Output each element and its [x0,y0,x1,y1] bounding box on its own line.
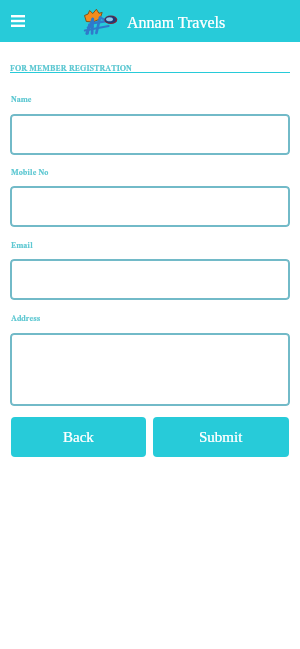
button[interactable]: Mobile No [11,163,49,181]
button[interactable]: Back [11,417,146,457]
button[interactable] [10,186,290,227]
staticText: FOR MEMBER REGISTRATION [10,59,132,77]
button[interactable]: Submit [153,417,289,457]
staticText: Address [11,309,41,327]
staticText: Annam Travels [127,14,226,32]
staticText: Email [11,236,33,254]
button[interactable]: FOR MEMBER REGISTRATION [10,59,132,77]
button[interactable] [10,114,290,155]
button[interactable]: Address [11,309,41,327]
button[interactable]: Email [11,236,33,254]
button[interactable] [10,333,290,406]
staticText: Name [11,90,32,108]
button[interactable] [10,259,290,300]
staticText: Submit [199,429,243,446]
staticText: Mobile No [11,163,49,181]
staticText: Back [63,429,94,446]
button[interactable]: Name [11,90,32,108]
button[interactable]: Open navigation menu [4,6,32,36]
